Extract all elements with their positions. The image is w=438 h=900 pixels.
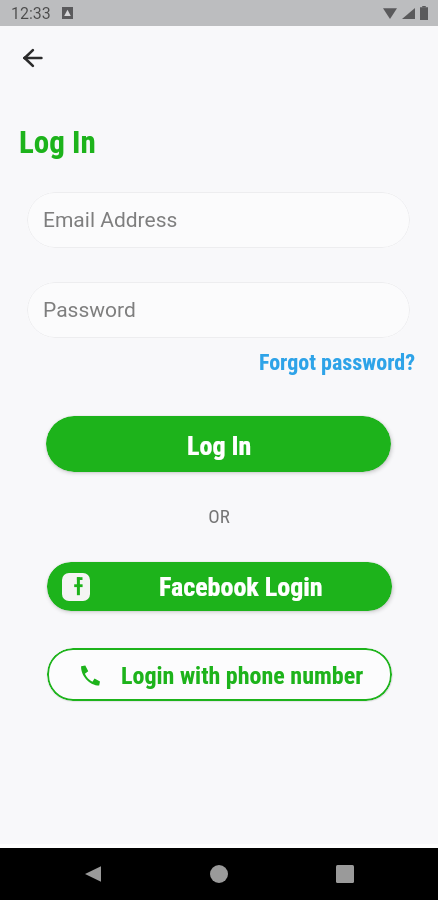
staticText: Email Address	[43, 208, 178, 233]
staticText: Login with phone number	[121, 662, 364, 690]
button[interactable]: Recent apps	[321, 850, 369, 898]
button[interactable]: Home	[195, 850, 243, 898]
button[interactable]: Log In	[46, 416, 391, 472]
staticText: Log In	[187, 431, 252, 461]
button[interactable]: Email Address	[27, 192, 410, 248]
staticText: 12:33	[11, 4, 51, 23]
button[interactable]: Password	[27, 282, 410, 338]
staticText: Password	[43, 298, 136, 323]
button[interactable]: Forgot password?	[0, 350, 415, 376]
staticText: Log In	[19, 124, 96, 160]
button[interactable]: Back	[10, 36, 54, 80]
staticText: Facebook Login	[159, 572, 323, 602]
button[interactable]: Login with phone number	[47, 648, 392, 701]
staticText: OR	[0, 505, 438, 527]
button[interactable]: Facebook Login	[47, 562, 392, 611]
button[interactable]: Back	[69, 850, 117, 898]
